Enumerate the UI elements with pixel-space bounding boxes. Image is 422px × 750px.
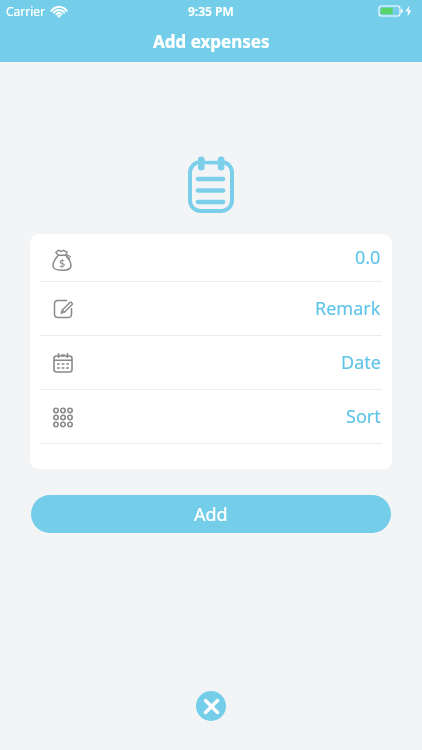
button[interactable]: $ [30, 234, 392, 281]
staticText: Sort [346, 404, 381, 429]
staticText: 0.0 [355, 245, 381, 270]
button[interactable]: Sort [30, 390, 392, 443]
button[interactable]: Date [30, 336, 392, 389]
button[interactable] [196, 691, 226, 721]
staticText: Carrier [6, 3, 46, 19]
button[interactable]: Remark [30, 282, 392, 335]
staticText: Date [341, 350, 381, 375]
staticText: 9:35 PM [188, 3, 234, 19]
staticText: Remark [315, 296, 381, 321]
staticText: Add expenses [153, 30, 270, 53]
staticText: Add [194, 502, 228, 527]
staticText: $ [59, 255, 66, 270]
button[interactable]: Add [31, 495, 391, 533]
